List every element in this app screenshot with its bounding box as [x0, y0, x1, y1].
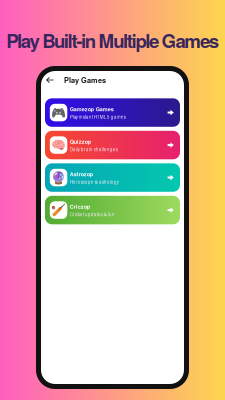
staticText: Play Games: [64, 75, 106, 85]
staticText: Quizzop: [70, 137, 91, 145]
staticText: Daily brain challenges: [70, 146, 118, 153]
button[interactable]: Back: [41, 72, 64, 87]
staticText: Play instant HTML5 games: [70, 113, 126, 120]
button[interactable]: 🎮: [45, 98, 180, 127]
button[interactable]: 🧠: [45, 131, 180, 159]
button[interactable]: 🏏: [45, 196, 180, 224]
staticText: Criczop: [70, 202, 90, 210]
staticText: Astrozop: [70, 170, 93, 178]
staticText: 🔮: [51, 170, 66, 185]
staticText: 🎮: [51, 105, 66, 120]
staticText: Play Built-in Multiple Games: [6, 27, 219, 54]
staticText: 🧠: [51, 138, 66, 152]
staticText: Horoscope & astrology: [70, 178, 119, 185]
staticText: 🏏: [51, 203, 66, 217]
button[interactable]: 🔮: [45, 163, 180, 192]
staticText: Cricket updates & fun: [70, 211, 115, 218]
staticText: Gamezop Games: [70, 105, 114, 113]
